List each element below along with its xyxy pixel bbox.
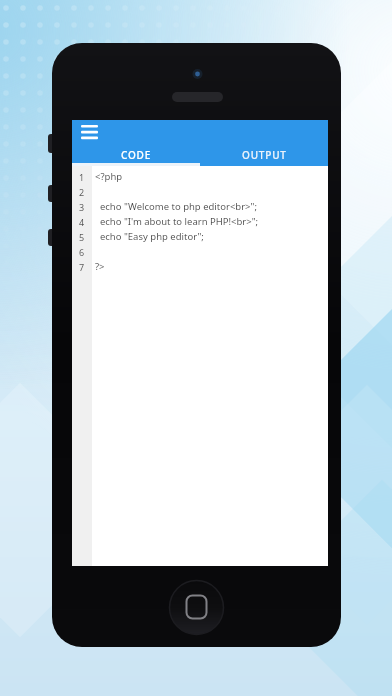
staticText: 5 [79,231,85,243]
button[interactable]: CODE [72,143,200,166]
staticText: 2 [79,186,85,198]
staticText: echo "I'm about to learn PHP!<br>"; [95,215,259,228]
staticText: CODE [121,148,152,162]
staticText: 4 [79,216,85,228]
button[interactable] [81,125,98,139]
staticText: ?> [95,260,105,273]
staticText: 7 [79,261,85,273]
staticText: 3 [79,201,85,213]
staticText: OUTPUT [242,148,287,162]
staticText: 1 [79,171,85,183]
staticText: 6 [79,246,85,258]
staticText: <?php [95,170,123,183]
staticText: echo "Easy php editor"; [95,230,204,243]
staticText: echo "Welcome to php editor<br>"; [95,200,257,213]
button[interactable]: OUTPUT [200,143,328,166]
